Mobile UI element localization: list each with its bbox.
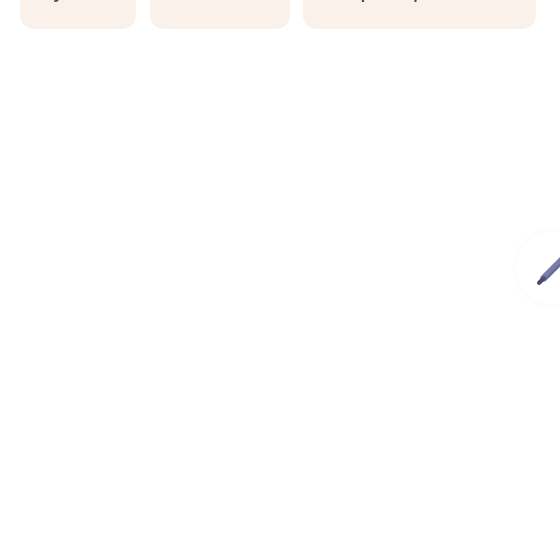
staticText: depuis la publication <box>342 0 498 3</box>
button[interactable]: depuis la publication <box>303 0 536 29</box>
button[interactable]: Compose <box>516 231 560 305</box>
button[interactable]: J'aime <box>20 0 136 29</box>
staticText: J'aime <box>55 0 101 3</box>
